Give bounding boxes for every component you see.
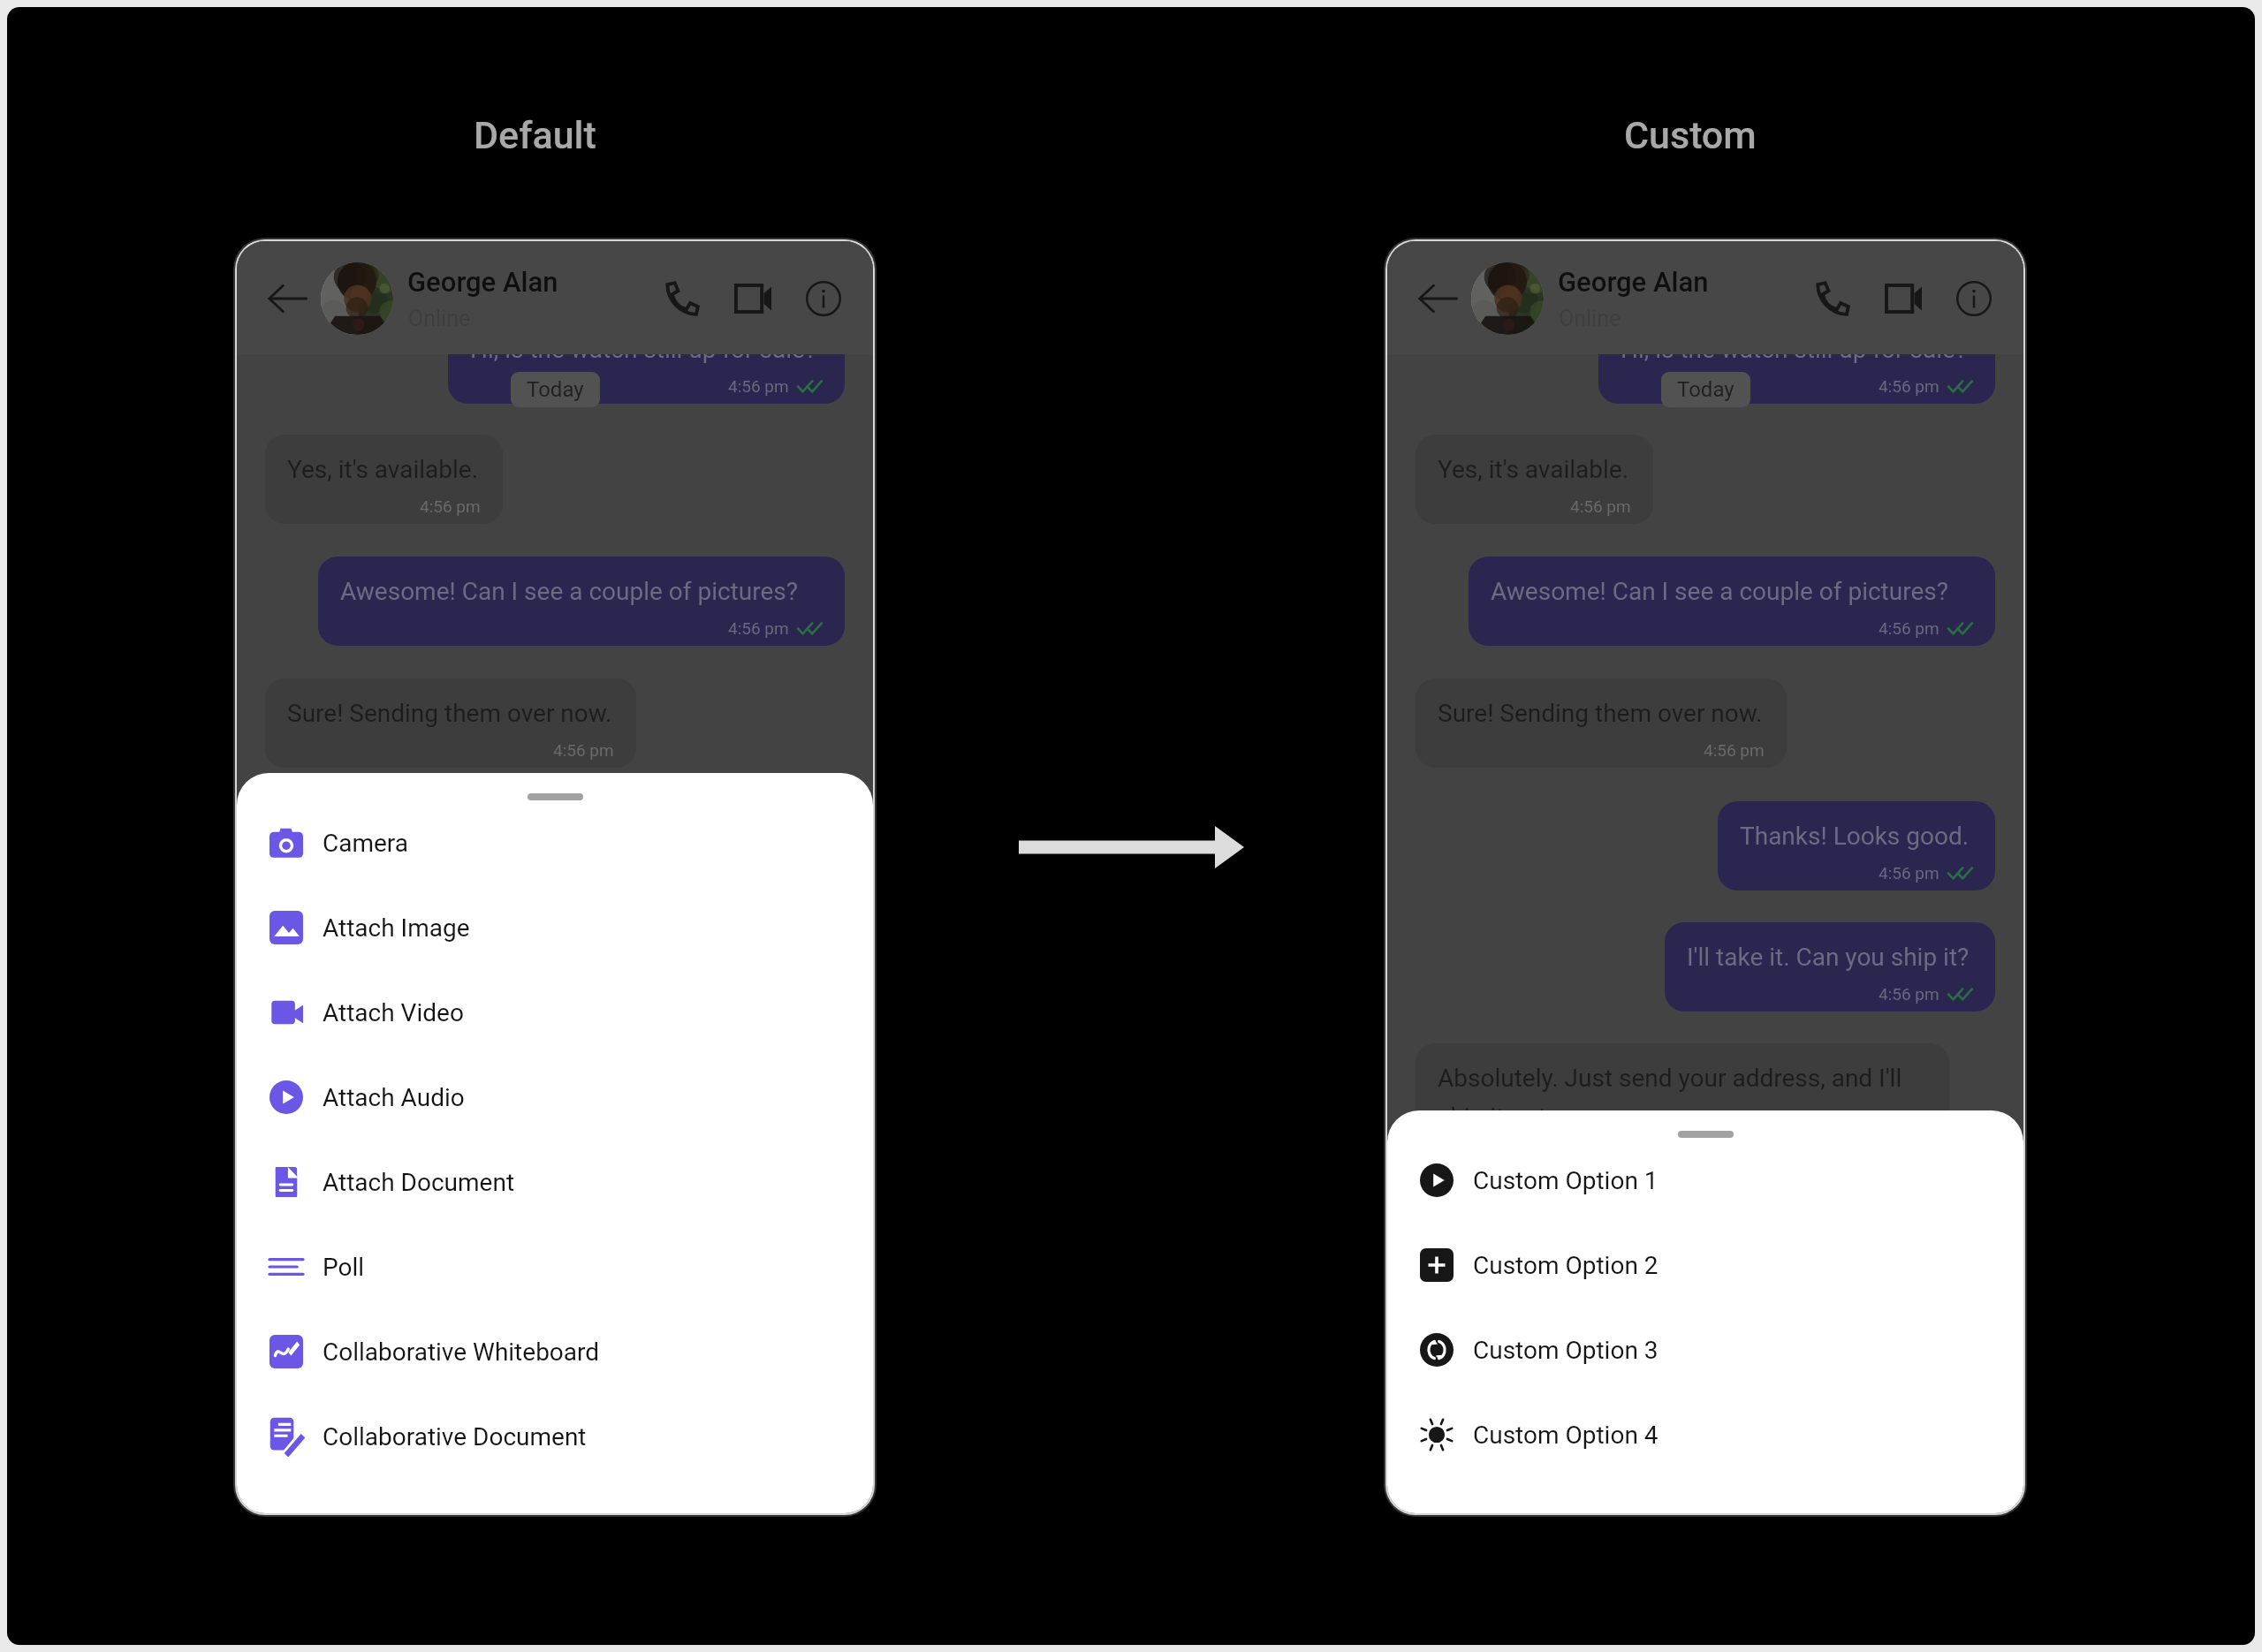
button[interactable]: Custom Option 4 xyxy=(1387,1392,2023,1477)
staticText: I'll take it. Can you ship it? xyxy=(1687,943,1970,972)
staticText: Camera xyxy=(323,829,409,858)
staticText: 4:56 pm xyxy=(728,618,789,638)
button[interactable]: Back xyxy=(259,270,315,327)
staticText: Sure! Sending them over now. xyxy=(1438,699,1763,728)
button[interactable]: Video call xyxy=(724,269,782,328)
button[interactable]: Attach Audio xyxy=(237,1055,873,1140)
staticText: Online xyxy=(408,306,471,331)
staticText: Custom xyxy=(1624,113,1757,157)
button[interactable]: Poll xyxy=(237,1224,873,1309)
staticText: Awesome! Can I see a couple of pictures? xyxy=(340,577,798,606)
staticText: 4:56 pm xyxy=(728,376,789,396)
button[interactable]: Video call xyxy=(1874,269,1932,328)
staticText: 4:56 pm xyxy=(1879,618,1939,638)
staticText: 4:56 pm xyxy=(1704,740,1765,760)
staticText: Attach Audio xyxy=(323,1083,465,1112)
button[interactable]: Info xyxy=(794,269,853,328)
button[interactable]: Attach Image xyxy=(237,885,873,970)
staticText: Hi, is the watch still up for sale? xyxy=(1621,335,1968,364)
button[interactable]: Collaborative Document xyxy=(237,1394,873,1479)
staticText: George Alan xyxy=(1558,266,1709,298)
button[interactable]: Custom Option 3 xyxy=(1387,1307,2023,1392)
button[interactable]: George Alan xyxy=(321,250,577,345)
staticText: 4:56 pm xyxy=(420,496,481,516)
staticText: Attach Image xyxy=(323,913,470,943)
staticText: Collaborative Document xyxy=(323,1422,587,1451)
staticText: Custom Option 3 xyxy=(1473,1336,1659,1365)
staticText: Yes, it's available. xyxy=(287,455,479,484)
staticText: Thanks! Looks good. xyxy=(1740,822,1970,851)
button[interactable]: George Alan xyxy=(1471,250,1727,345)
staticText: Yes, it's available. xyxy=(1438,455,1629,484)
staticText: Today xyxy=(527,377,584,402)
staticText: Online xyxy=(1559,306,1621,331)
staticText: 4:56 pm xyxy=(1570,496,1631,516)
staticText: 4:56 pm xyxy=(553,740,614,760)
button[interactable]: Custom Option 1 xyxy=(1387,1138,2023,1223)
staticText: Poll xyxy=(323,1253,365,1282)
staticText: Attach Video xyxy=(323,998,464,1027)
button[interactable]: Camera xyxy=(237,800,873,885)
staticText: Custom Option 2 xyxy=(1473,1251,1659,1280)
button[interactable]: Attach Document xyxy=(237,1140,873,1224)
button[interactable]: Collaborative Whiteboard xyxy=(237,1309,873,1394)
staticText: Absolutely. Just send your address, and … xyxy=(1438,1064,1927,1132)
button[interactable]: Info xyxy=(1945,269,2003,328)
button[interactable]: Call xyxy=(653,269,711,328)
button[interactable]: Drag handle xyxy=(237,793,873,800)
button[interactable]: Back xyxy=(1409,270,1466,327)
button[interactable]: Drag handle xyxy=(1387,1131,2023,1138)
staticText: Custom Option 1 xyxy=(1473,1166,1659,1195)
staticText: Attach Document xyxy=(323,1168,515,1197)
staticText: 4:56 pm xyxy=(1879,376,1939,396)
staticText: Hi, is the watch still up for sale? xyxy=(470,335,817,364)
button[interactable]: Attach Video xyxy=(237,970,873,1055)
staticText: 4:56 pm xyxy=(1879,863,1939,883)
staticText: Default xyxy=(474,113,596,157)
staticText: George Alan xyxy=(407,266,558,298)
button[interactable]: Custom Option 2 xyxy=(1387,1223,2023,1307)
staticText: Collaborative Whiteboard xyxy=(323,1338,600,1367)
staticText: 4:56 pm xyxy=(1879,984,1939,1004)
staticText: Sure! Sending them over now. xyxy=(287,699,612,728)
staticText: Awesome! Can I see a couple of pictures? xyxy=(1491,577,1948,606)
button[interactable]: Call xyxy=(1803,269,1862,328)
staticText: Today xyxy=(1677,377,1734,402)
staticText: Custom Option 4 xyxy=(1473,1421,1659,1450)
